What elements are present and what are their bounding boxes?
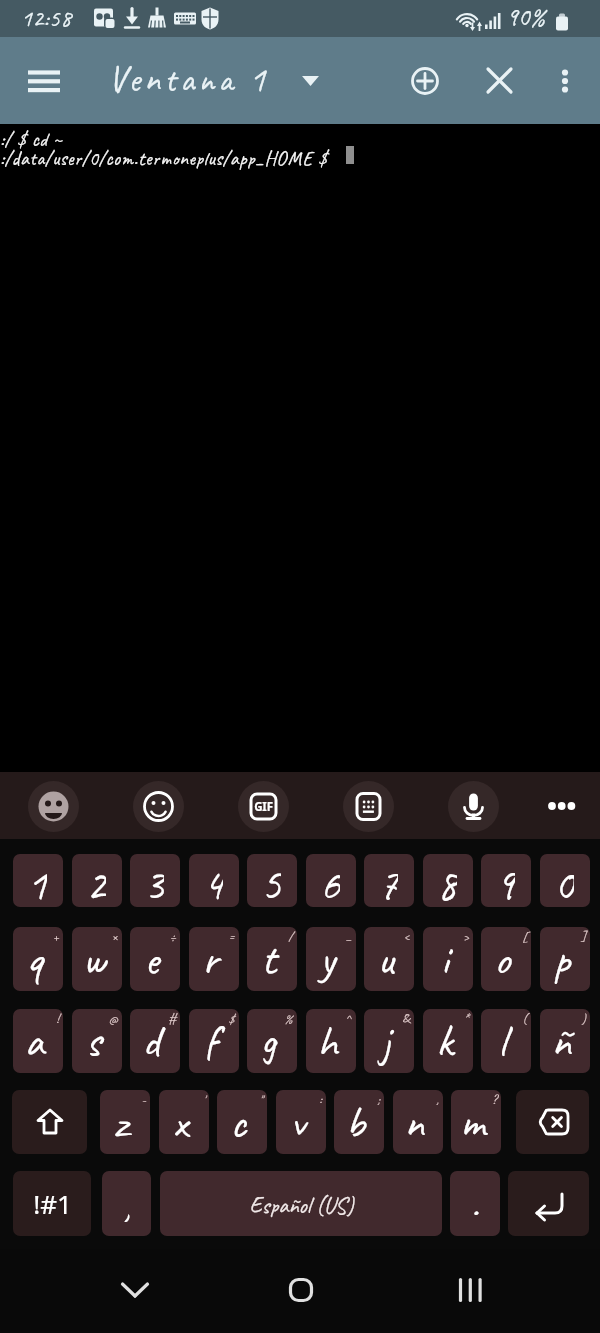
- button[interactable]: Space: [160, 1171, 442, 1236]
- button[interactable]: *: [423, 1009, 473, 1073]
- button[interactable]: 8: [423, 854, 473, 907]
- staticText: ñ: [551, 1014, 571, 1069]
- button[interactable]: 7: [364, 854, 414, 907]
- button[interactable]: .: [450, 1171, 500, 1236]
- button[interactable]: 6: [306, 854, 356, 907]
- staticText: :: [319, 1091, 322, 1109]
- button[interactable]: Hide keyboard: [104, 1259, 166, 1321]
- button[interactable]: Backspace: [516, 1090, 589, 1154]
- button[interactable]: &: [364, 1009, 414, 1073]
- button[interactable]: 5: [247, 854, 297, 907]
- button[interactable]: ;: [334, 1090, 384, 1154]
- staticText: y: [319, 932, 335, 987]
- staticText: &: [402, 1010, 410, 1028]
- staticText: ,: [123, 1184, 131, 1229]
- button[interactable]: ^: [306, 1009, 356, 1073]
- staticText: q: [26, 932, 43, 987]
- staticText: i: [440, 932, 449, 987]
- button[interactable]: ×: [72, 927, 122, 991]
- button[interactable]: =: [189, 927, 239, 991]
- button[interactable]: ?: [451, 1090, 501, 1154]
- button[interactable]: Symbols: [13, 1171, 91, 1236]
- staticText: 2: [86, 857, 106, 907]
- button[interactable]: Stickers: [133, 781, 184, 832]
- staticText: ]: [581, 928, 586, 946]
- button[interactable]: 1: [13, 854, 63, 907]
- button[interactable]: @: [72, 1009, 122, 1073]
- staticText: ^: [345, 1010, 352, 1028]
- button[interactable]: 3: [130, 854, 180, 907]
- staticText: ÷: [169, 928, 176, 946]
- button[interactable]: 9: [481, 854, 531, 907]
- staticText: %: [284, 1010, 293, 1028]
- button[interactable]: ': [159, 1090, 209, 1154]
- staticText: l: [498, 1014, 506, 1069]
- staticText: a: [24, 1014, 44, 1069]
- button[interactable]: !: [13, 1009, 63, 1073]
- staticText: w: [82, 932, 105, 987]
- button[interactable]: ,: [102, 1171, 151, 1236]
- button[interactable]: +: [13, 927, 63, 991]
- button[interactable]: Home: [270, 1259, 332, 1321]
- button[interactable]: 0: [540, 854, 590, 907]
- button[interactable]: (: [481, 1009, 531, 1073]
- staticText: 12:58: [21, 3, 72, 33]
- button[interactable]: More options: [535, 51, 594, 110]
- staticText: #: [168, 1010, 176, 1028]
- button[interactable]: ): [540, 1009, 590, 1073]
- staticText: e: [144, 932, 159, 987]
- staticText: 9: [495, 857, 515, 907]
- button[interactable]: Emoji: [28, 781, 79, 832]
- button[interactable]: /: [247, 927, 297, 991]
- button[interactable]: ,: [393, 1090, 443, 1154]
- button[interactable]: ": [217, 1090, 267, 1154]
- staticText: *: [463, 1010, 469, 1028]
- button[interactable]: Close window: [470, 51, 529, 110]
- button[interactable]: GIF: [238, 781, 289, 832]
- staticText: ×: [111, 928, 118, 946]
- staticText: 5: [261, 857, 281, 907]
- staticText: ": [259, 1091, 263, 1109]
- staticText: 7: [378, 857, 398, 907]
- button[interactable]: <: [364, 927, 414, 991]
- button[interactable]: 4: [189, 854, 239, 907]
- button[interactable]: ÷: [130, 927, 180, 991]
- staticText: ): [581, 1010, 586, 1028]
- button[interactable]: _: [306, 927, 356, 991]
- staticText: /: [288, 928, 293, 946]
- button[interactable]: $: [189, 1009, 239, 1073]
- button[interactable]: Recent apps: [439, 1259, 501, 1321]
- button[interactable]: >: [423, 927, 473, 991]
- button[interactable]: %: [247, 1009, 297, 1073]
- button[interactable]: Voice input: [448, 781, 499, 832]
- button[interactable]: -: [100, 1090, 150, 1154]
- staticText: GIF: [254, 799, 273, 815]
- button[interactable]: [: [481, 927, 531, 991]
- button[interactable]: More: [532, 776, 594, 836]
- button[interactable]: New window: [395, 51, 454, 110]
- staticText: f: [204, 1014, 217, 1069]
- button[interactable]: ]: [540, 927, 590, 991]
- staticText: o: [494, 932, 510, 987]
- button[interactable]: :: [276, 1090, 326, 1154]
- staticText: b: [345, 1095, 365, 1150]
- staticText: r: [202, 932, 218, 987]
- button[interactable]: Ventana 1: [108, 50, 319, 112]
- staticText: $: [228, 1010, 235, 1028]
- button[interactable]: #: [130, 1009, 180, 1073]
- staticText: d: [142, 1014, 160, 1069]
- button[interactable]: Enter: [508, 1171, 589, 1236]
- staticText: 0: [554, 857, 574, 907]
- staticText: +: [52, 928, 59, 946]
- staticText: t: [261, 932, 276, 987]
- staticText: 6: [320, 857, 340, 907]
- staticText: Ventana 1: [108, 56, 269, 101]
- staticText: ?: [491, 1091, 497, 1109]
- button[interactable]: Shift: [12, 1090, 87, 1154]
- button[interactable]: Menu: [14, 51, 73, 110]
- staticText: .: [471, 1182, 479, 1227]
- staticText: c: [230, 1095, 246, 1150]
- button[interactable]: Clipboard: [343, 781, 394, 832]
- button[interactable]: 2: [72, 854, 122, 907]
